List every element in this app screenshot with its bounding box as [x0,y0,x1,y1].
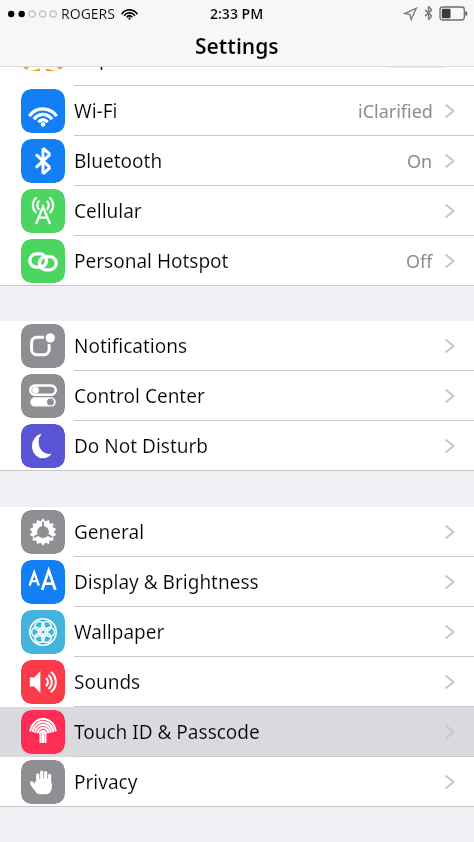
button[interactable]: Bluetooth [0,136,474,186]
staticText: On [407,149,433,174]
button[interactable]: Notifications [0,321,474,371]
staticText: Off [406,249,433,274]
staticText: Sounds [74,669,141,695]
button[interactable]: Privacy [0,757,474,807]
staticText: Settings [195,32,279,61]
staticText: Airplane Mode [74,45,205,71]
button[interactable]: Do Not Disturb [0,421,474,471]
staticText: ROGERS [61,4,116,23]
staticText: Cellular [74,198,142,224]
staticText: Privacy [74,769,138,795]
staticText: Bluetooth [74,148,163,174]
staticText: General [74,519,145,545]
staticText: Touch ID & Passcode [74,719,260,745]
staticText: Do Not Disturb [74,433,209,459]
button[interactable]: Wi-Fi [0,86,474,136]
staticText: Personal Hotspot [74,248,229,274]
staticText: iClarified [358,99,433,124]
button[interactable]: Control Center [0,371,474,421]
button[interactable]: General [0,507,474,557]
staticText: Wi-Fi [74,98,118,124]
staticText: Notifications [74,333,188,359]
staticText: Display & Brightness [74,569,259,595]
staticText: 2:33 PM [210,4,264,23]
button[interactable]: Touch ID & Passcode [0,707,474,757]
button[interactable]: Display & Brightness [0,557,474,607]
button[interactable]: Airplane Mode [0,57,474,86]
button[interactable]: Personal Hotspot [0,236,474,286]
button[interactable]: Cellular [0,186,474,236]
button[interactable]: Sounds [0,657,474,707]
staticText: Control Center [74,383,205,409]
staticText: Wallpaper [74,619,165,645]
button[interactable]: Wallpaper [0,607,474,657]
